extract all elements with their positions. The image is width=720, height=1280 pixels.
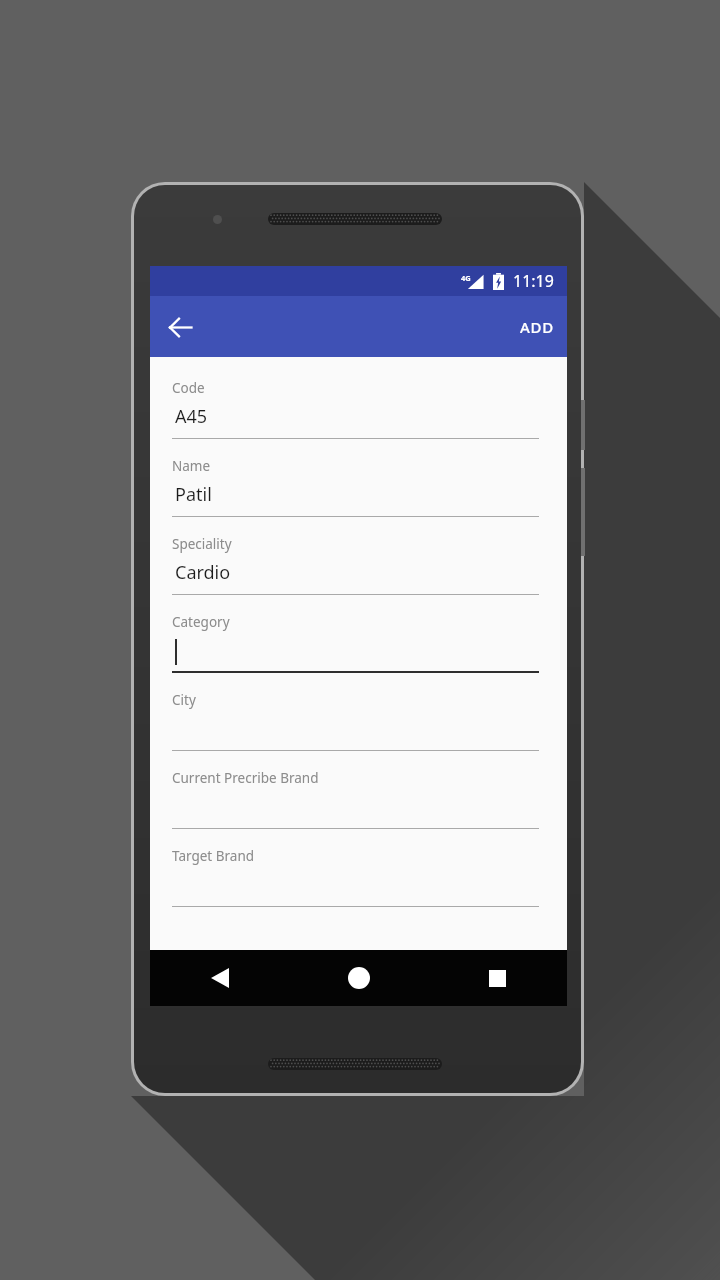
button[interactable]: Current Precribe Brand — [172, 769, 539, 847]
button[interactable]: ADD — [507, 302, 567, 352]
button[interactable]: City — [172, 691, 539, 769]
button[interactable]: Back — [156, 303, 204, 351]
staticText: Category — [172, 613, 230, 631]
staticText: ADD — [520, 317, 554, 337]
button[interactable]: Code — [172, 379, 539, 457]
staticText: 4G — [461, 273, 471, 283]
button[interactable]: Category — [172, 613, 539, 691]
staticText: City — [172, 691, 196, 709]
staticText: Cardio — [175, 560, 231, 585]
button[interactable]: Name — [172, 457, 539, 535]
button[interactable]: Recent apps — [428, 950, 567, 1006]
button[interactable]: Speciality — [172, 535, 539, 613]
button[interactable]: Target Brand — [172, 847, 539, 925]
staticText: A45 — [175, 404, 208, 429]
staticText: 11:19 — [513, 270, 554, 292]
button[interactable]: Back — [150, 950, 289, 1006]
staticText: Speciality — [172, 535, 232, 553]
staticText: Patil — [175, 482, 212, 507]
button[interactable]: Home — [289, 950, 428, 1006]
staticText: Current Precribe Brand — [172, 769, 319, 787]
staticText: Code — [172, 379, 205, 397]
staticText: Name — [172, 457, 211, 475]
staticText: Target Brand — [172, 847, 255, 865]
